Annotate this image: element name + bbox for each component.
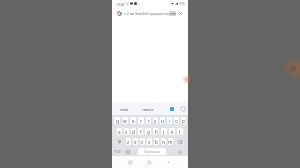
staticText: с 2 по 5км3кб прошенны (124, 11, 169, 16)
staticText: q (116, 118, 119, 124)
button[interactable]: твой (112, 103, 136, 115)
button[interactable]: Українська (138, 148, 166, 155)
staticText: u (161, 118, 164, 124)
staticText: w (123, 118, 127, 124)
staticText: m (168, 139, 173, 145)
button[interactable]: Search (171, 148, 188, 155)
staticText: i (169, 118, 171, 124)
button[interactable]: Settings (177, 103, 188, 115)
staticText: твоего (142, 107, 154, 112)
staticText: c (141, 139, 144, 145)
button[interactable]: Recent apps (121, 156, 140, 168)
button[interactable]: q (114, 117, 120, 124)
staticText: e (132, 118, 135, 124)
button[interactable]: l (177, 128, 183, 135)
button[interactable]: Switch language (122, 148, 133, 155)
staticText: o (175, 118, 178, 124)
button[interactable]: f (138, 128, 143, 135)
button[interactable]: h (153, 128, 159, 135)
button[interactable]: t (146, 117, 151, 124)
staticText: Українська (144, 150, 160, 154)
staticText: k (171, 129, 174, 135)
button[interactable]: x (133, 138, 138, 145)
staticText: f (140, 129, 142, 135)
button[interactable]: s (124, 128, 129, 135)
button[interactable]: ?123 (112, 148, 122, 155)
staticText: y (154, 118, 157, 124)
button[interactable]: j (161, 128, 167, 135)
button[interactable]: i (167, 117, 172, 124)
button[interactable]: v (147, 138, 152, 145)
button[interactable]: u (160, 117, 165, 124)
button[interactable]: . (166, 148, 171, 155)
button[interactable]: r (138, 117, 144, 124)
staticText: , (135, 149, 137, 154)
button[interactable]: d (131, 128, 136, 135)
button[interactable]: n (161, 138, 166, 145)
staticText: n (162, 139, 165, 145)
staticText: h (155, 129, 158, 135)
staticText: z (127, 139, 130, 145)
staticText: 10:42 (116, 2, 125, 6)
button[interactable]: Shift (114, 138, 125, 145)
button[interactable]: a (117, 128, 122, 135)
staticText: . (168, 149, 170, 154)
button[interactable]: y (153, 117, 158, 124)
button[interactable]: o (174, 117, 179, 124)
button[interactable]: Clipboard (166, 103, 177, 115)
button[interactable]: твоего (136, 103, 160, 115)
button[interactable]: Backspace (174, 138, 186, 145)
staticText: l (179, 129, 181, 135)
button[interactable]: с 2 по 5км3кб прошенны (112, 7, 188, 20)
button[interactable]: e (130, 117, 136, 124)
button[interactable]: k (169, 128, 175, 135)
button[interactable]: z (126, 138, 131, 145)
button[interactable]: Clear search (178, 11, 183, 16)
staticText: твой (120, 107, 129, 112)
button[interactable]: g (145, 128, 151, 135)
button[interactable]: m (168, 138, 173, 145)
staticText: g (147, 129, 150, 135)
staticText: b (155, 139, 158, 145)
button[interactable]: Back (159, 156, 178, 168)
button[interactable]: , (133, 148, 138, 155)
button[interactable]: p (181, 117, 186, 124)
button[interactable]: c (140, 138, 145, 145)
staticText: j (163, 129, 165, 135)
button[interactable]: b (154, 138, 159, 145)
staticText: s (125, 129, 128, 135)
staticText: ?123 (114, 150, 121, 154)
staticText: p (182, 118, 185, 124)
staticText: d (132, 129, 135, 135)
staticText: 100 (179, 2, 185, 6)
staticText: x (134, 139, 137, 145)
staticText: тек (169, 11, 176, 16)
staticText: t (148, 118, 150, 124)
staticText: v (148, 139, 151, 145)
staticText: r (140, 118, 142, 124)
button[interactable]: w (122, 117, 128, 124)
button[interactable]: Home (140, 156, 159, 168)
staticText: a (118, 129, 121, 135)
